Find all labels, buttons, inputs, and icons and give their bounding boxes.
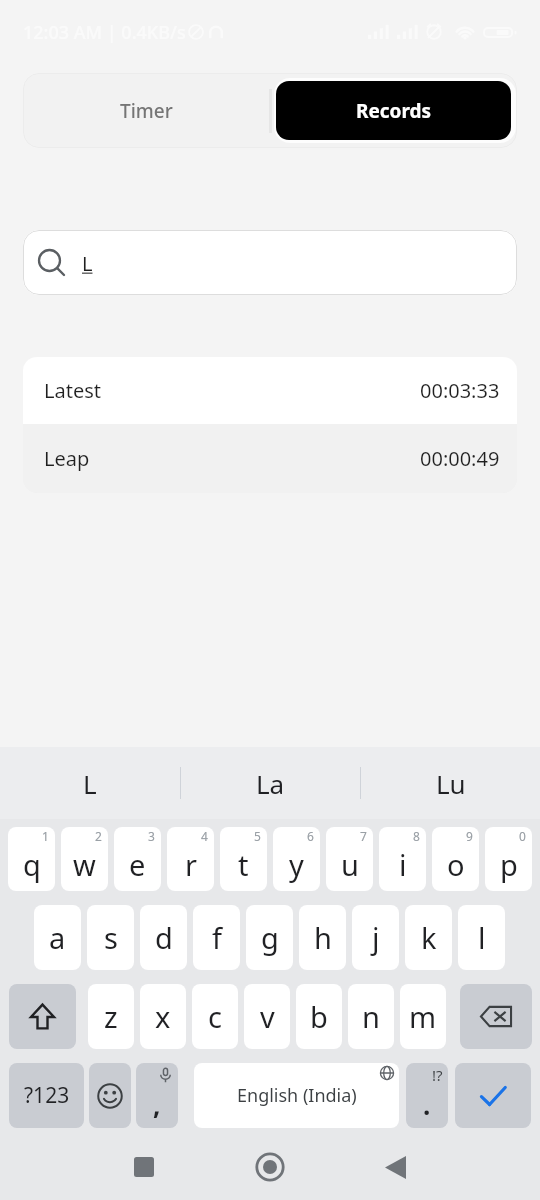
- button[interactable]: Enter: [455, 1063, 531, 1128]
- button[interactable]: Recents: [108, 1135, 180, 1199]
- staticText: o: [447, 845, 465, 884]
- button[interactable]: f: [193, 905, 240, 970]
- button[interactable]: 7: [326, 827, 373, 891]
- button[interactable]: d: [140, 905, 187, 970]
- button[interactable]: Timer: [23, 73, 270, 148]
- staticText: c: [208, 997, 222, 1036]
- staticText: f: [212, 918, 222, 957]
- staticText: z: [104, 997, 118, 1036]
- button[interactable]: g: [246, 905, 293, 970]
- staticText: ?123: [24, 1081, 70, 1110]
- staticText: l: [478, 918, 486, 957]
- button[interactable]: 2: [61, 827, 108, 891]
- staticText: 00:03:33: [420, 377, 500, 404]
- button[interactable]: Records: [276, 81, 511, 140]
- staticText: y: [289, 845, 304, 884]
- staticText: 4: [201, 828, 208, 844]
- staticText: 1: [42, 828, 49, 844]
- staticText: Records: [356, 98, 432, 124]
- button[interactable]: a: [34, 905, 81, 970]
- staticText: !?: [432, 1065, 443, 1085]
- button[interactable]: 5: [220, 827, 267, 891]
- staticText: Timer: [120, 98, 173, 124]
- button[interactable]: English (India): [194, 1063, 399, 1128]
- staticText: x: [155, 997, 171, 1036]
- button[interactable]: v: [244, 984, 290, 1049]
- staticText: 00:00:49: [420, 445, 500, 472]
- staticText: .: [423, 1087, 431, 1122]
- staticText: r: [185, 845, 197, 884]
- button[interactable]: j: [352, 905, 399, 970]
- staticText: s: [104, 918, 118, 957]
- button[interactable]: m: [400, 984, 446, 1049]
- button[interactable]: 3: [114, 827, 161, 891]
- staticText: a: [49, 918, 66, 957]
- button[interactable]: ,: [136, 1063, 178, 1128]
- staticText: 2: [95, 828, 102, 844]
- staticText: w: [73, 845, 96, 884]
- button[interactable]: 8: [379, 827, 426, 891]
- staticText: English (India): [237, 1083, 357, 1108]
- staticText: j: [372, 918, 380, 957]
- button[interactable]: c: [192, 984, 238, 1049]
- staticText: q: [23, 845, 41, 884]
- button[interactable]: 4: [167, 827, 214, 891]
- staticText: k: [421, 918, 437, 957]
- staticText: n: [362, 997, 380, 1036]
- staticText: 9: [466, 828, 473, 844]
- staticText: L: [82, 250, 93, 277]
- staticText: Latest: [44, 377, 101, 404]
- button[interactable]: 0: [485, 827, 532, 891]
- staticText: L: [83, 766, 97, 801]
- staticText: 5: [254, 828, 261, 844]
- staticText: h: [314, 918, 332, 957]
- button[interactable]: Home: [234, 1135, 306, 1199]
- staticText: La: [256, 766, 285, 801]
- staticText: m: [409, 997, 437, 1036]
- button[interactable]: !?: [406, 1063, 448, 1128]
- staticText: i: [399, 845, 407, 884]
- staticText: g: [261, 918, 279, 957]
- button[interactable]: Shift: [9, 984, 76, 1049]
- button[interactable]: l: [458, 905, 505, 970]
- staticText: e: [129, 845, 146, 884]
- staticText: v: [260, 997, 275, 1036]
- button[interactable]: L: [0, 747, 180, 819]
- staticText: ,: [153, 1087, 161, 1122]
- staticText: t: [238, 845, 249, 884]
- staticText: d: [155, 918, 173, 957]
- button[interactable]: 6: [273, 827, 320, 891]
- button[interactable]: b: [296, 984, 342, 1049]
- button[interactable]: Lu: [361, 747, 540, 819]
- staticText: p: [500, 845, 518, 884]
- staticText: u: [341, 845, 359, 884]
- button[interactable]: n: [348, 984, 394, 1049]
- button[interactable]: Latest: [23, 357, 517, 424]
- button[interactable]: L: [23, 230, 517, 295]
- staticText: 3: [148, 828, 155, 844]
- staticText: b: [310, 997, 328, 1036]
- staticText: 7: [360, 828, 367, 844]
- button[interactable]: La: [181, 747, 360, 819]
- button[interactable]: Back: [359, 1135, 431, 1199]
- button[interactable]: 1: [8, 827, 55, 891]
- staticText: 6: [307, 828, 314, 844]
- button[interactable]: Backspace: [460, 984, 532, 1049]
- staticText: 0: [519, 828, 526, 844]
- button[interactable]: ?123: [9, 1063, 84, 1128]
- staticText: 8: [413, 828, 420, 844]
- button[interactable]: 9: [432, 827, 479, 891]
- staticText: Lu: [436, 766, 466, 801]
- button[interactable]: s: [87, 905, 134, 970]
- staticText: Leap: [44, 445, 90, 472]
- button[interactable]: Leap: [23, 424, 517, 493]
- button[interactable]: x: [140, 984, 186, 1049]
- button[interactable]: h: [299, 905, 346, 970]
- button[interactable]: k: [405, 905, 452, 970]
- button[interactable]: Emoji: [89, 1063, 131, 1128]
- button[interactable]: z: [88, 984, 134, 1049]
